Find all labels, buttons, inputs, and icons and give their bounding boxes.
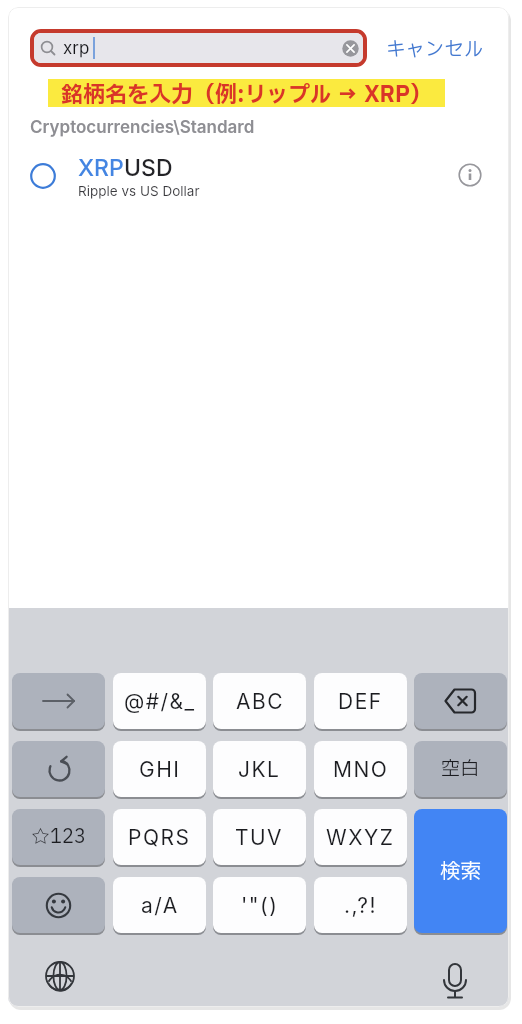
staticText: TUV: [235, 825, 284, 850]
staticText: USD: [124, 154, 173, 182]
button[interactable]: 空白: [414, 741, 507, 797]
button[interactable]: [414, 673, 507, 729]
staticText: 空白: [441, 755, 480, 783]
staticText: DEF: [338, 689, 383, 714]
button[interactable]: .,?!: [314, 877, 407, 933]
staticText: GHI: [139, 757, 181, 782]
staticText: '"(): [241, 893, 279, 918]
button[interactable]: PQRS: [113, 809, 206, 865]
staticText: Ripple vs US Dollar: [78, 183, 200, 199]
staticText: キャンセル: [386, 35, 484, 64]
staticText: JKL: [238, 757, 281, 782]
staticText: WXYZ: [326, 825, 395, 850]
button[interactable]: XRP: [8, 152, 509, 202]
button[interactable]: [12, 877, 105, 933]
staticText: 検索: [440, 856, 481, 887]
staticText: .,?!: [344, 893, 377, 918]
button[interactable]: DEF: [314, 673, 407, 729]
button[interactable]: GHI: [113, 741, 206, 797]
staticText: a/A: [141, 893, 179, 918]
button[interactable]: [12, 741, 105, 797]
button[interactable]: WXYZ: [314, 809, 407, 865]
staticText: PQRS: [128, 825, 191, 850]
button[interactable]: キャンセル: [386, 35, 484, 64]
staticText: xrp: [63, 38, 90, 59]
button[interactable]: [12, 673, 105, 729]
button[interactable]: @#/&_: [113, 673, 206, 729]
button[interactable]: JKL: [213, 741, 306, 797]
button[interactable]: MNO: [314, 741, 407, 797]
staticText: 銘柄名を入力（例:リップル → XRP）: [61, 79, 433, 107]
staticText: MNO: [333, 757, 389, 782]
button[interactable]: [44, 960, 76, 992]
button[interactable]: xrp: [34, 33, 363, 63]
button[interactable]: a/A: [113, 877, 206, 933]
staticText: @#/&_: [124, 689, 196, 714]
button[interactable]: 検索: [414, 809, 507, 933]
button[interactable]: ABC: [213, 673, 306, 729]
button[interactable]: [437, 962, 473, 1006]
button[interactable]: '"(): [213, 877, 306, 933]
button[interactable]: TUV: [213, 809, 306, 865]
staticText: XRP: [78, 154, 124, 182]
staticText: Cryptocurrencies\Standard: [30, 117, 255, 138]
staticText: ABC: [236, 689, 284, 714]
button[interactable]: ☆123: [12, 809, 105, 865]
staticText: ☆123: [31, 823, 86, 851]
button[interactable]: [458, 163, 482, 187]
